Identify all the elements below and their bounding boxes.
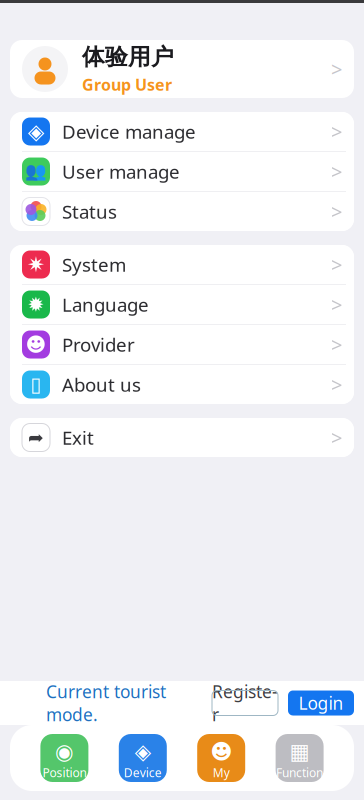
staticText: ☻ bbox=[25, 333, 46, 356]
button[interactable]: ▯ bbox=[10, 365, 354, 404]
staticText: Provider bbox=[62, 332, 135, 357]
staticText: My bbox=[213, 765, 230, 780]
staticText: Register bbox=[212, 680, 278, 726]
staticText: Current tourist mode. bbox=[46, 680, 166, 726]
staticText: ◉ bbox=[55, 739, 74, 764]
staticText: Status bbox=[62, 199, 117, 224]
staticText: > bbox=[331, 56, 342, 82]
staticText: > bbox=[331, 424, 342, 451]
staticText: Position bbox=[42, 765, 86, 780]
staticText: 👥 bbox=[25, 162, 47, 181]
staticText: User manage bbox=[62, 159, 180, 184]
button[interactable]: ▦ bbox=[276, 734, 324, 782]
staticText: About us bbox=[62, 372, 141, 397]
staticText: ✹ bbox=[27, 293, 44, 316]
button[interactable]: Status bbox=[10, 192, 354, 231]
staticText: > bbox=[331, 158, 342, 185]
button[interactable]: ➦ bbox=[10, 418, 354, 457]
staticText: 体验用户 bbox=[82, 43, 174, 71]
button[interactable]: ◉ bbox=[40, 734, 88, 782]
staticText: Language bbox=[62, 292, 149, 317]
staticText: ☻ bbox=[210, 739, 232, 764]
staticText: > bbox=[331, 251, 342, 278]
staticText: ▯ bbox=[30, 373, 41, 396]
staticText: > bbox=[331, 371, 342, 398]
staticText: ▦ bbox=[290, 739, 310, 764]
button[interactable]: ☻ bbox=[197, 734, 245, 782]
staticText: Group User bbox=[82, 74, 172, 95]
button[interactable]: 体验用户 bbox=[10, 40, 354, 98]
staticText: ◈ bbox=[135, 739, 151, 764]
button[interactable]: Login bbox=[288, 690, 354, 715]
button[interactable]: ☻ bbox=[10, 325, 354, 364]
button[interactable]: ✹ bbox=[10, 285, 354, 324]
button[interactable]: ◈ bbox=[10, 112, 354, 151]
staticText: Login bbox=[298, 691, 343, 714]
staticText: Exit bbox=[62, 425, 94, 450]
button[interactable]: 👥 bbox=[10, 152, 354, 191]
button[interactable]: ✷ bbox=[10, 245, 354, 284]
staticText: > bbox=[331, 331, 342, 358]
button[interactable]: ◈ bbox=[119, 734, 167, 782]
staticText: Function bbox=[276, 765, 323, 780]
staticText: > bbox=[331, 198, 342, 225]
staticText: > bbox=[331, 291, 342, 318]
staticText: Device manage bbox=[62, 119, 196, 144]
staticText: Device bbox=[124, 765, 162, 780]
staticText: System bbox=[62, 252, 126, 277]
staticText: ✷ bbox=[27, 252, 45, 277]
staticText: ◈ bbox=[28, 119, 44, 144]
button[interactable]: Register bbox=[212, 690, 278, 715]
staticText: > bbox=[331, 118, 342, 145]
staticText: ➦ bbox=[28, 427, 44, 448]
